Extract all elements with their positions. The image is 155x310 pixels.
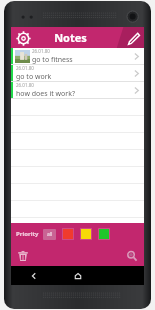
staticText: how does it work?	[16, 89, 75, 99]
button[interactable]: 26.01.80	[11, 48, 144, 65]
staticText: all	[47, 231, 53, 238]
button[interactable]: Priority	[16, 230, 39, 238]
button[interactable]: Delete	[14, 247, 32, 265]
button[interactable]: Settings	[14, 29, 32, 47]
button[interactable]: 26.01.80	[11, 82, 144, 99]
button[interactable]: Home	[56, 266, 100, 285]
staticText: go to fitness	[32, 55, 73, 65]
staticText: Notes	[54, 30, 87, 45]
button[interactable]: all	[43, 229, 56, 240]
button[interactable]: Search	[123, 247, 141, 265]
button[interactable]: New note	[124, 29, 142, 47]
button[interactable]: 26.01.80	[11, 65, 144, 82]
staticText: 26.01.80	[16, 82, 34, 88]
button[interactable]: Back	[11, 266, 56, 285]
staticText: go to work	[16, 72, 52, 82]
staticText: 26.01.80	[16, 65, 34, 71]
staticText: 26.01.80	[32, 48, 50, 54]
